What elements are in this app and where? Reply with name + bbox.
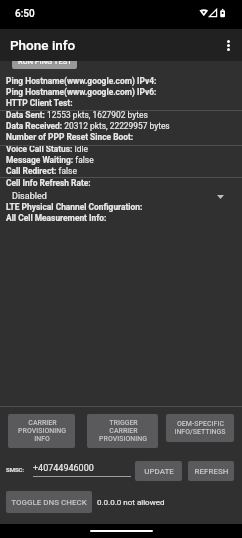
staticText: TRIGGER <box>109 419 138 427</box>
staticText: 0.0.0.0 not allowed <box>97 498 165 507</box>
staticText: Disabled <box>12 191 47 202</box>
staticText: HTTP Client Test: <box>6 98 73 108</box>
staticText: Phone info <box>10 37 76 53</box>
staticText: INFO <box>34 435 50 443</box>
staticText: PROVISIONING <box>18 427 66 435</box>
staticText: Voice Call Status: Idle <box>6 144 89 154</box>
staticText: SMSC: <box>6 466 25 473</box>
button[interactable]: Disabled <box>0 190 242 203</box>
staticText: CARRIER <box>28 419 57 427</box>
staticText: Message Waiting: false <box>6 155 94 165</box>
staticText: TOGGLE DNS CHECK <box>11 498 87 507</box>
button[interactable]: TRIGGER <box>87 414 158 448</box>
button[interactable]: OEM-SPECIFIC <box>166 414 234 442</box>
button[interactable]: RUN PING TEST <box>12 61 77 69</box>
staticText: All Cell Measurement Info: <box>6 213 107 223</box>
staticText: RUN PING TEST <box>18 61 72 66</box>
staticText: +40744946000 <box>33 463 94 474</box>
button[interactable]: More options <box>214 31 242 59</box>
staticText: CARRIER <box>109 427 138 435</box>
staticText: Ping Hostname(www.google.com) IPv6: <box>6 87 157 97</box>
button[interactable]: REFRESH <box>188 461 234 481</box>
staticText: 6:50 <box>15 8 35 20</box>
staticText: Ping Hostname(www.google.com) IPv4: <box>6 76 157 86</box>
staticText: Call Redirect: false <box>6 166 77 176</box>
staticText: PROVISIONING <box>99 435 147 443</box>
staticText: INFO/SETTINGS <box>174 428 226 436</box>
button[interactable]: UPDATE <box>135 461 182 481</box>
staticText: Data Sent: 12553 pkts, 1627902 bytes <box>6 110 148 120</box>
staticText: Number of PPP Reset Since Boot: <box>6 132 134 142</box>
staticText: REFRESH <box>194 467 229 476</box>
staticText: Data Received: 20312 pkts, 22229957 byte… <box>6 121 170 131</box>
button[interactable]: TOGGLE DNS CHECK <box>6 491 92 513</box>
staticText: OEM-SPECIFIC <box>177 420 224 428</box>
staticText: LTE Physical Channel Configuration: <box>6 202 143 212</box>
staticText: Cell Info Refresh Rate: <box>6 178 91 188</box>
button[interactable]: CARRIER <box>8 414 75 448</box>
staticText: UPDATE <box>144 467 174 476</box>
